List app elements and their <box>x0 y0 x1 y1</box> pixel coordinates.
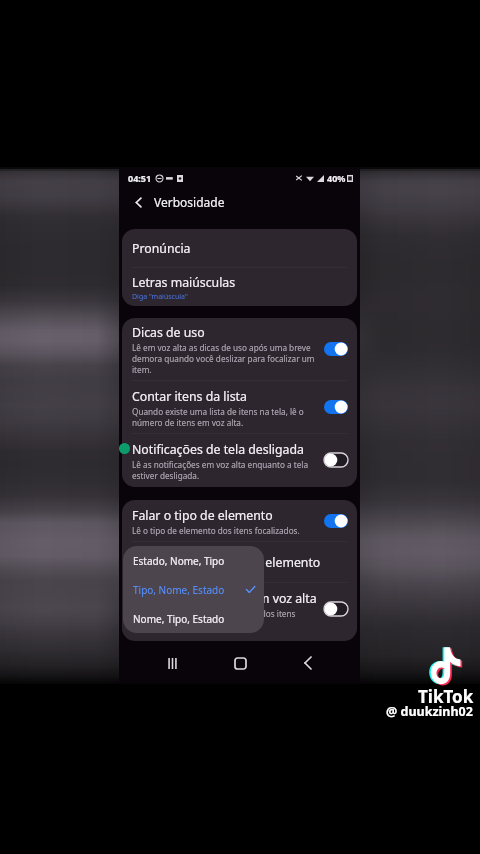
staticText: Diga "maiúscula" <box>132 292 188 302</box>
staticText: Ordem do tipo de elemento <box>160 554 321 571</box>
staticText: @ duukzinh02 <box>386 703 473 720</box>
staticText: Nome, Tipo, Estado <box>133 612 225 626</box>
staticText: Lê o tipo de elemento dos itens focaliza… <box>132 525 300 536</box>
staticText: Falar o tipo de elemento <box>132 507 273 524</box>
button[interactable]: Letras maiúsculas <box>122 268 357 301</box>
button[interactable]: Ler texto formatado em voz alta <box>122 583 357 635</box>
staticText: TikTok <box>418 685 474 708</box>
button[interactable]: Falar o tipo de elemento <box>122 500 357 541</box>
staticText: 40% <box>327 172 346 184</box>
staticText: Lê as notificações em voz alta enquanto … <box>132 459 318 481</box>
staticText: Letras maiúsculas <box>132 274 236 291</box>
staticText: Notificações de tela desligada <box>132 441 304 458</box>
button[interactable]: Toggle <box>324 602 348 616</box>
staticText: Tipo, Nome, Estado <box>133 583 225 597</box>
staticText: Verbosidade <box>154 194 225 210</box>
staticText: Lê em voz alta o texto formatado dos ite… <box>132 608 318 630</box>
staticText: 04:51 <box>128 172 152 184</box>
button[interactable]: Home <box>226 649 254 677</box>
button[interactable]: Back <box>294 649 322 677</box>
button[interactable]: Pronúncia <box>122 229 357 267</box>
button[interactable]: Tipo, Nome, Estado <box>123 575 264 604</box>
button[interactable]: Dicas de uso <box>122 318 357 380</box>
button[interactable]: Contar itens da lista <box>122 381 357 433</box>
button[interactable]: Toggle <box>324 342 348 356</box>
staticText: Pronúncia <box>132 240 191 257</box>
button[interactable]: Toggle <box>324 400 348 414</box>
button[interactable]: Recents <box>158 649 186 677</box>
staticText: Contar itens da lista <box>132 388 247 405</box>
staticText: Dicas de uso <box>132 324 205 341</box>
staticText: Quando existe uma lista de itens na tela… <box>132 406 318 428</box>
button[interactable]: Notificações de tela desligada <box>122 434 357 486</box>
staticText: Lê em voz alta as dicas de uso após uma … <box>132 342 318 375</box>
button[interactable]: Toggle <box>324 453 348 467</box>
button[interactable]: Estado, Nome, Tipo <box>123 546 264 575</box>
button[interactable]: Nome, Tipo, Estado <box>123 604 264 633</box>
button[interactable]: Toggle <box>324 514 348 528</box>
staticText: Ler texto formatado em voz alta <box>132 590 317 607</box>
button[interactable]: Back <box>127 191 149 213</box>
button[interactable]: Ordem do tipo de elemento <box>122 542 357 582</box>
staticText: Estado, Nome, Tipo <box>133 554 225 568</box>
